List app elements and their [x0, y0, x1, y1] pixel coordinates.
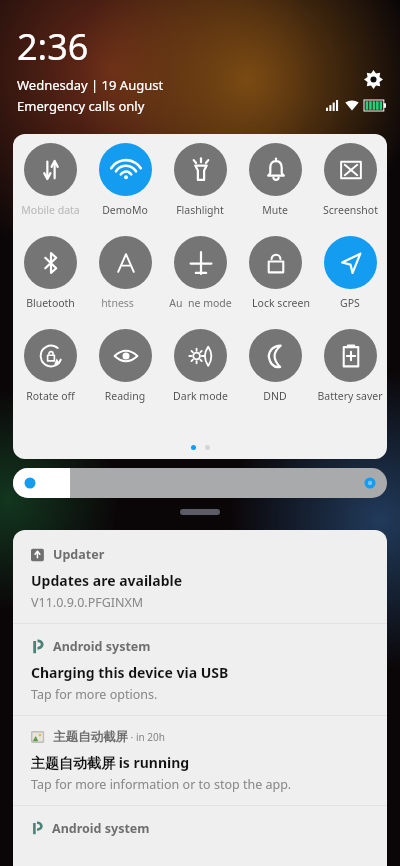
staticText: Mobile data	[21, 203, 80, 217]
button[interactable]: Lock screen	[240, 236, 310, 310]
staticText: Reading mode	[90, 389, 160, 403]
staticText: · in 20h	[128, 730, 165, 744]
button[interactable]: Flashlight	[165, 143, 235, 217]
staticText: Android system	[53, 638, 151, 655]
staticText: Bluetooth	[26, 296, 75, 310]
staticText: DND	[263, 389, 287, 403]
staticText: Tap for more information or to stop the …	[31, 776, 292, 793]
button[interactable]: Rotate off	[15, 329, 85, 403]
staticText: Lock screen	[252, 296, 310, 310]
button[interactable]: Reading mode	[90, 329, 160, 403]
staticText: GPS	[340, 296, 360, 310]
button[interactable]: DemoMo	[90, 143, 160, 217]
staticText: Dark mode	[173, 389, 228, 403]
staticText: Au ne mode	[169, 296, 232, 310]
staticText: Battery saver	[317, 389, 383, 403]
button[interactable]	[13, 468, 387, 498]
staticText: 主题自动截屏 is running	[31, 753, 190, 772]
button[interactable]: Updater	[13, 530, 387, 623]
button[interactable]: Android system	[13, 624, 387, 715]
staticText: Wednesday | 19 August	[17, 76, 164, 94]
staticText: 主题自动截屏	[53, 729, 128, 745]
button[interactable]: Mobile data	[15, 143, 85, 217]
staticText: Tap for more options.	[31, 686, 158, 703]
button[interactable]: Dark mode	[165, 329, 235, 403]
button[interactable]: Mute	[240, 143, 310, 217]
button[interactable]: Screenshot	[315, 143, 385, 217]
button[interactable]: DND	[240, 329, 310, 403]
staticText: Updater	[53, 546, 105, 563]
staticText: Screenshot	[323, 203, 378, 217]
staticText: Updates are available	[31, 571, 183, 590]
staticText: Rotate off	[26, 389, 75, 403]
staticText: htness	[101, 296, 134, 310]
button[interactable]: GPS	[315, 236, 385, 310]
button[interactable]: Android system	[13, 806, 387, 866]
button[interactable]: Bluetooth	[15, 236, 85, 310]
button[interactable]: htness	[90, 236, 160, 310]
staticText: V11.0.9.0.PFGINXM	[31, 594, 144, 611]
staticText: Android system	[52, 820, 150, 837]
button[interactable]: Battery saver	[315, 329, 385, 403]
staticText: DemoMo	[102, 203, 148, 217]
button[interactable]: 主题自动截屏	[13, 716, 387, 805]
staticText: Emergency calls only	[17, 97, 145, 115]
staticText: Mute	[262, 203, 288, 217]
staticText: Charging this device via USB	[31, 663, 229, 682]
button[interactable]: Au ne mode	[165, 236, 235, 310]
button[interactable]: Settings	[360, 66, 386, 92]
staticText: Flashlight	[176, 203, 224, 217]
staticText: 2:36	[17, 22, 89, 71]
